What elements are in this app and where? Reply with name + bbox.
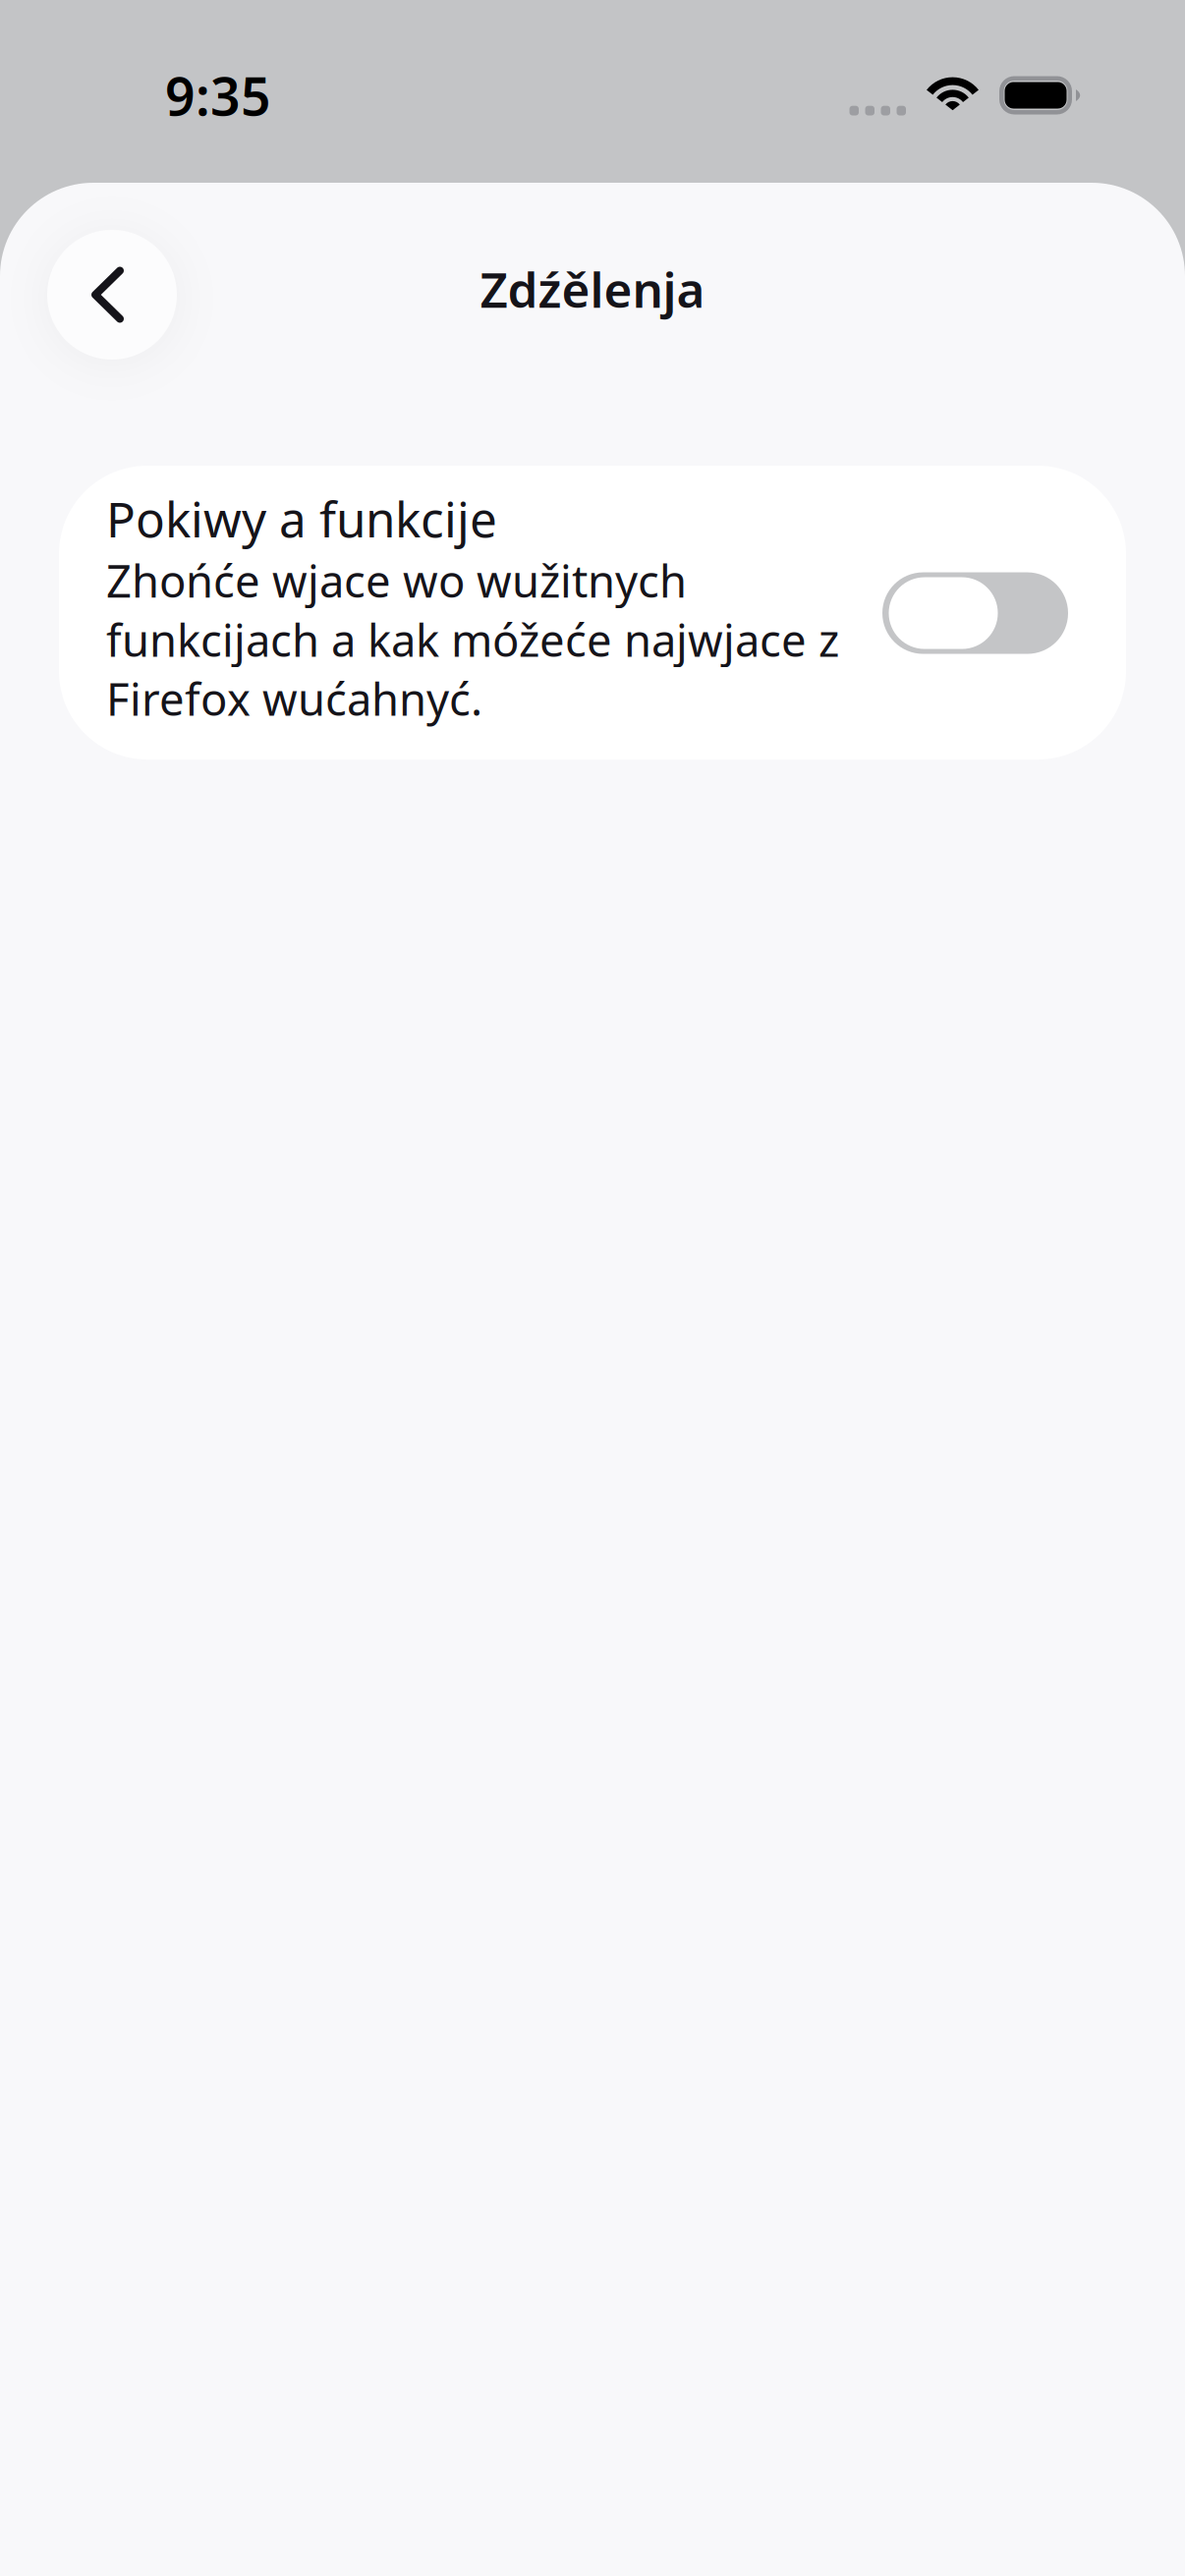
staticText: Pokiwy a funkcije [106,486,497,551]
staticText: Zdźělenja [480,257,705,321]
button[interactable]: Pokiwy a funkcije [59,466,1126,760]
staticText: Zhońće wjace wo wužitnych funkcijach a k… [106,551,839,728]
button[interactable]: Back [47,230,177,360]
staticText: 9:35 [165,61,271,130]
